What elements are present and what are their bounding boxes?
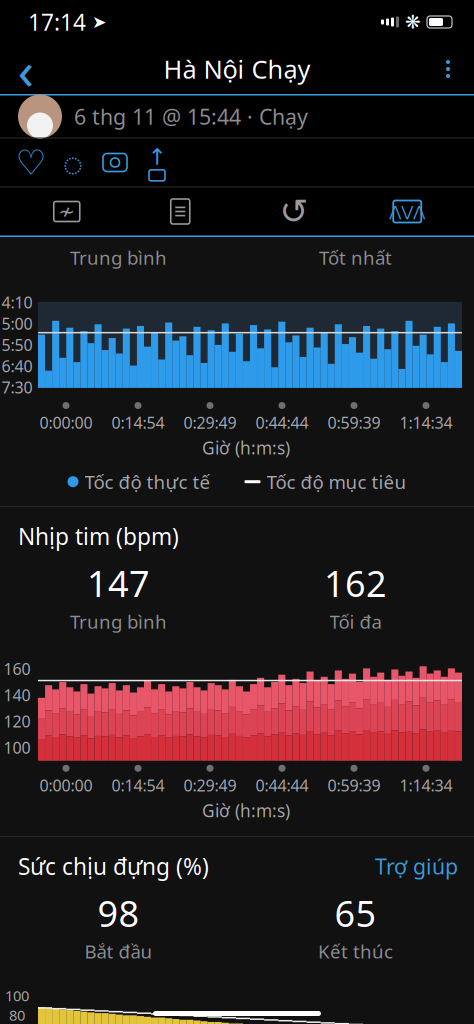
staticText: 140 (3, 684, 30, 706)
staticText: 98 (97, 889, 139, 937)
staticText: ◌ (62, 139, 83, 185)
staticText: Giờ (h:m:s) (202, 799, 290, 822)
staticText: Trung bình (70, 245, 167, 270)
staticText: 1:14:34 (399, 412, 452, 433)
staticText: ≁ (58, 200, 75, 223)
button[interactable]: Back (0, 47, 52, 91)
staticText: 4:10 (1, 292, 32, 313)
staticText: 0:14:54 (111, 412, 164, 433)
staticText: 65 (334, 889, 376, 937)
staticText: 7:30 (1, 377, 32, 398)
button[interactable]: Laps (237, 190, 350, 232)
staticText: 1:14:34 (399, 775, 452, 796)
staticText: 160 (3, 658, 30, 679)
staticText: Kết thúc (318, 939, 393, 964)
staticText: Tốt nhất (319, 245, 392, 270)
staticText: Trung bình (70, 609, 167, 634)
staticText: Hà Nội Chạy (163, 52, 310, 86)
staticText: 5:50 (1, 334, 32, 355)
staticText: Tốc độ thực tế (84, 469, 210, 494)
staticText: 100 (5, 986, 29, 1005)
button[interactable]: More options (422, 47, 474, 91)
button[interactable]: Map (10, 190, 123, 232)
button[interactable]: Comment (52, 141, 94, 183)
staticText: ♡ (15, 143, 46, 182)
staticText: 0:44:44 (255, 775, 308, 796)
staticText: 5:00 (1, 313, 32, 334)
staticText: 0:29:49 (183, 412, 236, 433)
staticText: Trợ giúp (375, 852, 458, 880)
staticText: Giờ (h:m:s) (202, 436, 290, 459)
staticText: 17:14 (28, 7, 86, 37)
staticText: 0:00:00 (39, 775, 92, 796)
staticText: ➤ (92, 12, 107, 32)
staticText: 6:40 (1, 355, 32, 377)
staticText: ‹ (17, 34, 34, 104)
staticText: Sức chịu đựng (%) (18, 851, 209, 881)
button[interactable]: Trợ giúp (375, 852, 458, 880)
button[interactable]: Charts (350, 190, 464, 232)
staticText: 0:00:00 (39, 412, 92, 433)
button[interactable]: Share (136, 141, 178, 183)
staticText: 0:44:44 (255, 412, 308, 433)
staticText: ❋ (405, 11, 421, 33)
staticText: 0:59:39 (327, 775, 380, 796)
staticText: Tối đa (329, 609, 381, 634)
staticText: Bắt đầu (84, 939, 152, 964)
staticText: ↑ (147, 144, 166, 170)
staticText: 0:29:49 (183, 775, 236, 796)
staticText: 0:14:54 (111, 775, 164, 796)
staticText: 80 (9, 1005, 25, 1024)
staticText: 147 (87, 559, 150, 607)
staticText: 162 (324, 559, 387, 607)
button[interactable]: Like (10, 141, 52, 183)
staticText: 6 thg 11 @ 15:44 · Chạy (74, 102, 308, 131)
staticText: 100 (3, 737, 30, 758)
button[interactable]: Add photo (94, 141, 136, 183)
staticText: 0:59:39 (327, 412, 380, 433)
staticText: ⋀⋁⋀ (389, 203, 425, 220)
staticText: ↺ (279, 192, 308, 231)
staticText: 120 (3, 711, 30, 732)
staticText: Tốc độ mục tiêu (266, 469, 406, 494)
button[interactable]: Details (123, 190, 237, 232)
staticText: Nhịp tim (bpm) (18, 521, 179, 551)
